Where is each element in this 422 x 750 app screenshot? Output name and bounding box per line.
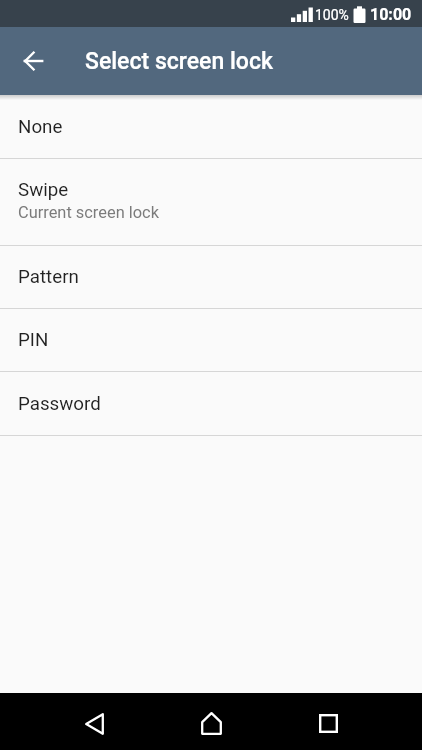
staticText: 100% xyxy=(315,7,349,23)
button[interactable] xyxy=(153,693,270,750)
button[interactable]: Password xyxy=(0,372,422,435)
staticText: PIN xyxy=(18,329,49,351)
staticText: Pattern xyxy=(18,266,79,288)
button[interactable]: None xyxy=(0,95,422,158)
staticText: Password xyxy=(18,393,101,415)
button[interactable]: Pattern xyxy=(0,246,422,308)
staticText: Select screen lock xyxy=(85,48,273,75)
button[interactable]: Swipe xyxy=(0,159,422,245)
button[interactable]: PIN xyxy=(0,309,422,371)
staticText: None xyxy=(18,116,63,138)
staticText: Swipe xyxy=(18,179,69,201)
button[interactable] xyxy=(36,693,153,750)
button[interactable] xyxy=(270,693,387,750)
staticText: Current screen lock xyxy=(18,203,159,222)
staticText: 10:00 xyxy=(370,5,412,24)
button[interactable] xyxy=(0,27,67,95)
